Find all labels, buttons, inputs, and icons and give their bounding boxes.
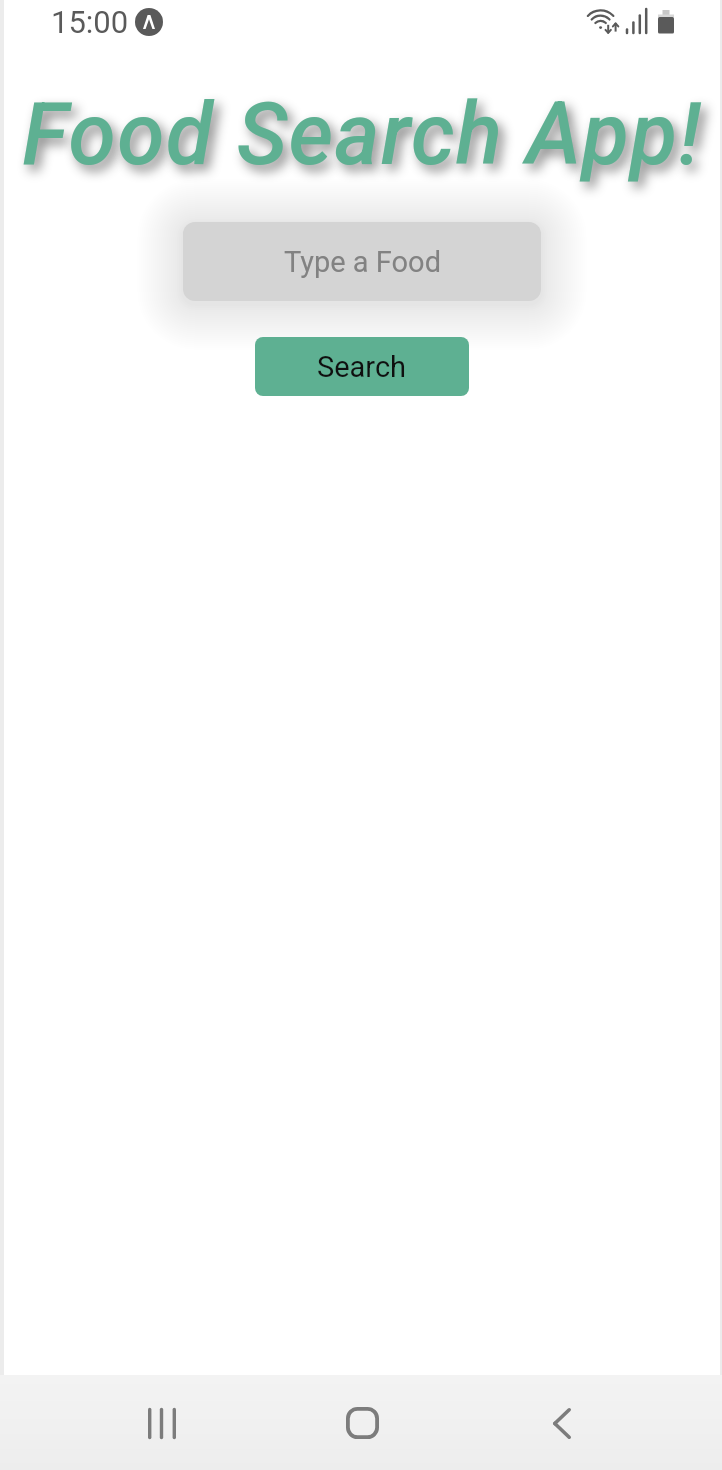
- staticText: 15:00: [51, 4, 129, 40]
- button[interactable]: Recent apps: [114, 1379, 210, 1467]
- staticText: Food Search App!: [22, 84, 702, 185]
- staticText: Type a Food: [284, 245, 441, 279]
- button[interactable]: Search: [255, 337, 469, 396]
- other: Wi-Fi, signal and battery status: [581, 0, 691, 46]
- other: Notifications: [135, 8, 163, 36]
- staticText: Search: [317, 350, 407, 384]
- button[interactable]: Back: [514, 1379, 610, 1467]
- button[interactable]: Type a Food: [183, 222, 541, 301]
- button[interactable]: Home: [314, 1379, 410, 1467]
